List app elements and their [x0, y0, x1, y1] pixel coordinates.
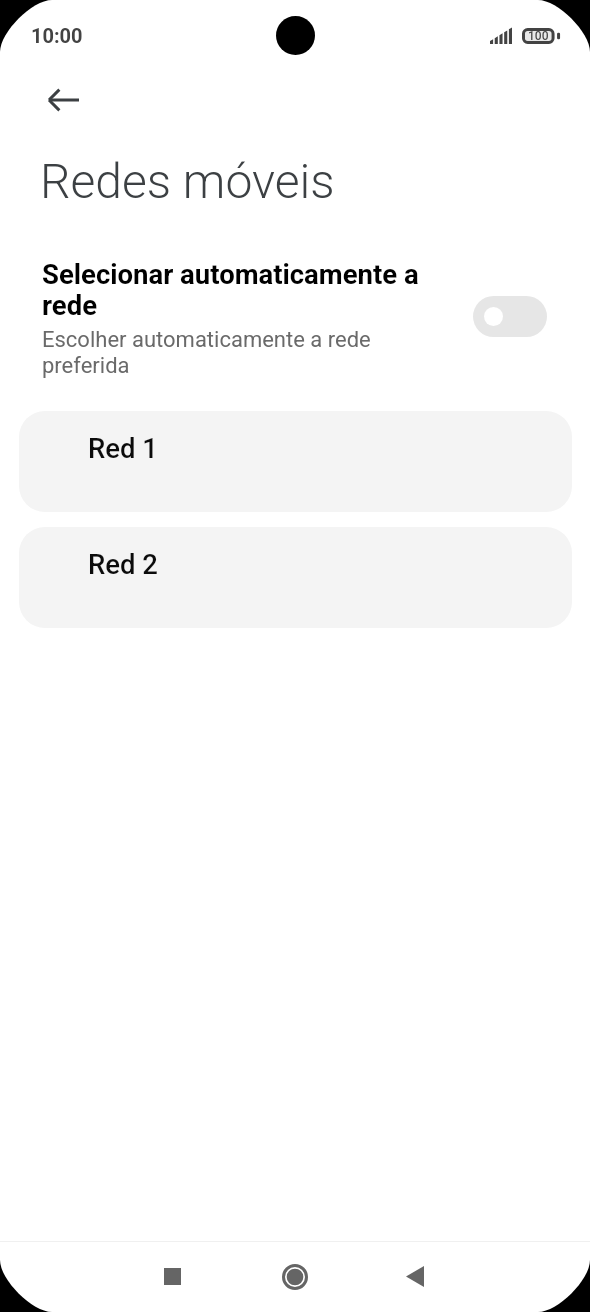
staticText: 100 [528, 29, 549, 43]
staticText: Escolher automaticamente a rede preferid… [42, 327, 432, 379]
button[interactable]: Back [40, 76, 88, 124]
staticText: Redes móveis [40, 153, 335, 209]
staticText: Selecionar automaticamente a rede [42, 258, 432, 321]
button[interactable]: Home [266, 1248, 323, 1305]
button[interactable]: Red 1 [19, 411, 572, 512]
staticText: 10:00 [31, 24, 83, 47]
button[interactable]: Recent apps [144, 1248, 201, 1305]
button[interactable]: Selecionar automaticamente a rede [473, 296, 547, 337]
staticText: Red 1 [88, 432, 158, 464]
button[interactable]: Back [386, 1248, 443, 1305]
button[interactable]: Red 2 [19, 527, 572, 628]
staticText: Red 2 [88, 548, 158, 580]
button[interactable]: Selecionar automaticamente a rede [0, 258, 590, 379]
